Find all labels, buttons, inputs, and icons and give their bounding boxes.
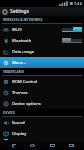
staticText: Themes xyxy=(12,90,82,96)
staticText: Sound xyxy=(12,120,82,126)
button[interactable]: More... xyxy=(0,57,84,68)
button[interactable]: Storage xyxy=(0,139,84,140)
staticText: Settings xyxy=(10,8,30,15)
staticText: Device options xyxy=(12,101,82,107)
button[interactable]: Screenshot xyxy=(64,140,78,150)
staticText: Data usage xyxy=(12,49,82,55)
button[interactable]: Device options xyxy=(0,98,84,109)
staticText: Wi-Fi xyxy=(12,27,62,33)
button[interactable]: Recent apps xyxy=(45,140,59,150)
button[interactable]: Wi-Fi xyxy=(0,24,84,35)
button[interactable]: Themes xyxy=(0,87,84,98)
staticText: Display xyxy=(12,131,82,137)
button[interactable]: ROM Control xyxy=(0,76,84,87)
staticText: Bluetooth xyxy=(12,38,62,44)
staticText: 7:46 xyxy=(74,1,82,6)
button[interactable]: Data usage xyxy=(0,46,84,57)
button[interactable]: Back xyxy=(6,140,20,150)
button[interactable]: Home xyxy=(25,140,39,150)
staticText: ROM Control xyxy=(12,79,82,85)
button[interactable]: Bluetooth xyxy=(0,35,84,46)
button[interactable]: Sound xyxy=(0,117,84,128)
button[interactable]: Display xyxy=(0,128,84,139)
staticText: SMARTLAND xyxy=(3,69,25,74)
button[interactable] xyxy=(62,38,82,43)
staticText: DEVICE xyxy=(3,110,15,115)
staticText: More... xyxy=(12,60,82,66)
button[interactable] xyxy=(62,27,82,32)
staticText: WIRELESS & NETWORKS xyxy=(3,17,43,22)
